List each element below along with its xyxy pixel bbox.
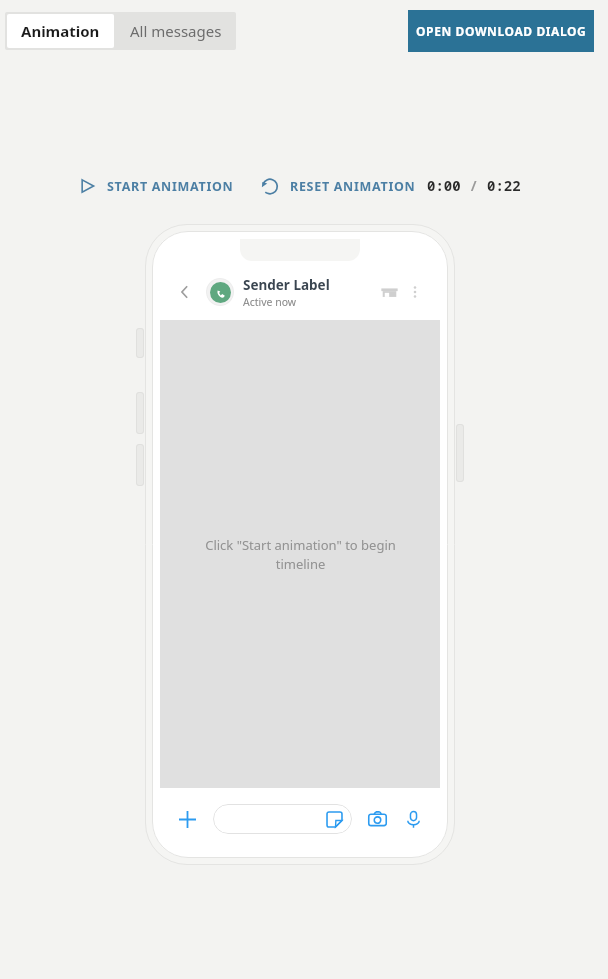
staticText: START ANIMATION xyxy=(107,178,234,195)
staticText: RESET ANIMATION xyxy=(290,178,416,195)
staticText: / xyxy=(461,176,487,195)
staticText: Sender Label xyxy=(243,276,330,294)
staticText: 0:00 xyxy=(427,176,461,195)
other: Stickers xyxy=(324,809,344,829)
staticText: Animation xyxy=(21,21,100,41)
button[interactable]: Camera xyxy=(364,806,390,832)
button[interactable]: All messages xyxy=(116,12,236,50)
staticText: Click "Start animation" to begin timelin… xyxy=(193,536,408,573)
staticText: OPEN DOWNLOAD DIALOG xyxy=(416,23,587,39)
button[interactable]: Voice message xyxy=(400,806,426,832)
button[interactable]: Back xyxy=(172,279,198,305)
button[interactable]: More options xyxy=(402,279,428,305)
staticText: 0:22 xyxy=(487,176,521,195)
button[interactable]: RESET ANIMATION xyxy=(259,172,416,200)
button[interactable]: Store xyxy=(376,279,402,305)
button[interactable]: Stickers xyxy=(213,804,352,834)
button[interactable]: Animation xyxy=(7,14,114,48)
button[interactable]: Add attachment xyxy=(174,806,200,832)
staticText: Active now xyxy=(243,295,297,309)
button[interactable]: START ANIMATION xyxy=(76,172,234,200)
staticText: All messages xyxy=(130,21,222,41)
button[interactable]: OPEN DOWNLOAD DIALOG xyxy=(408,10,594,52)
